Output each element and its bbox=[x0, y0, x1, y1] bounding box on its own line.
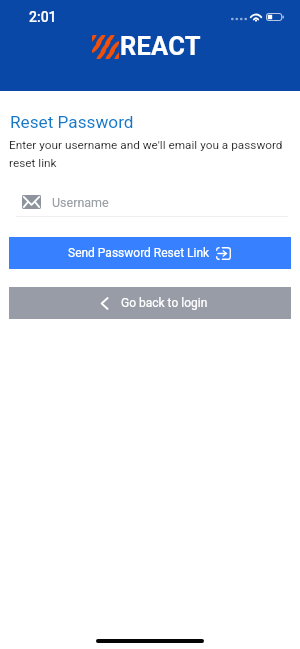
staticText: Username bbox=[52, 195, 109, 210]
staticText: Go back to login bbox=[121, 296, 208, 310]
button[interactable]: Username bbox=[0, 190, 300, 217]
staticText: REACT bbox=[120, 31, 201, 61]
button[interactable]: Send Password Reset Link bbox=[9, 237, 291, 269]
button[interactable]: Go back to login bbox=[9, 287, 291, 319]
other: Wifi bbox=[250, 12, 262, 21]
other: Battery bbox=[266, 13, 284, 21]
staticText: Enter your username and we'll email you … bbox=[9, 138, 291, 170]
staticText: 2:01 bbox=[29, 9, 57, 25]
staticText: Reset Password bbox=[10, 112, 134, 132]
staticText: Send Password Reset Link bbox=[68, 246, 210, 260]
other: Submit bbox=[216, 247, 231, 260]
